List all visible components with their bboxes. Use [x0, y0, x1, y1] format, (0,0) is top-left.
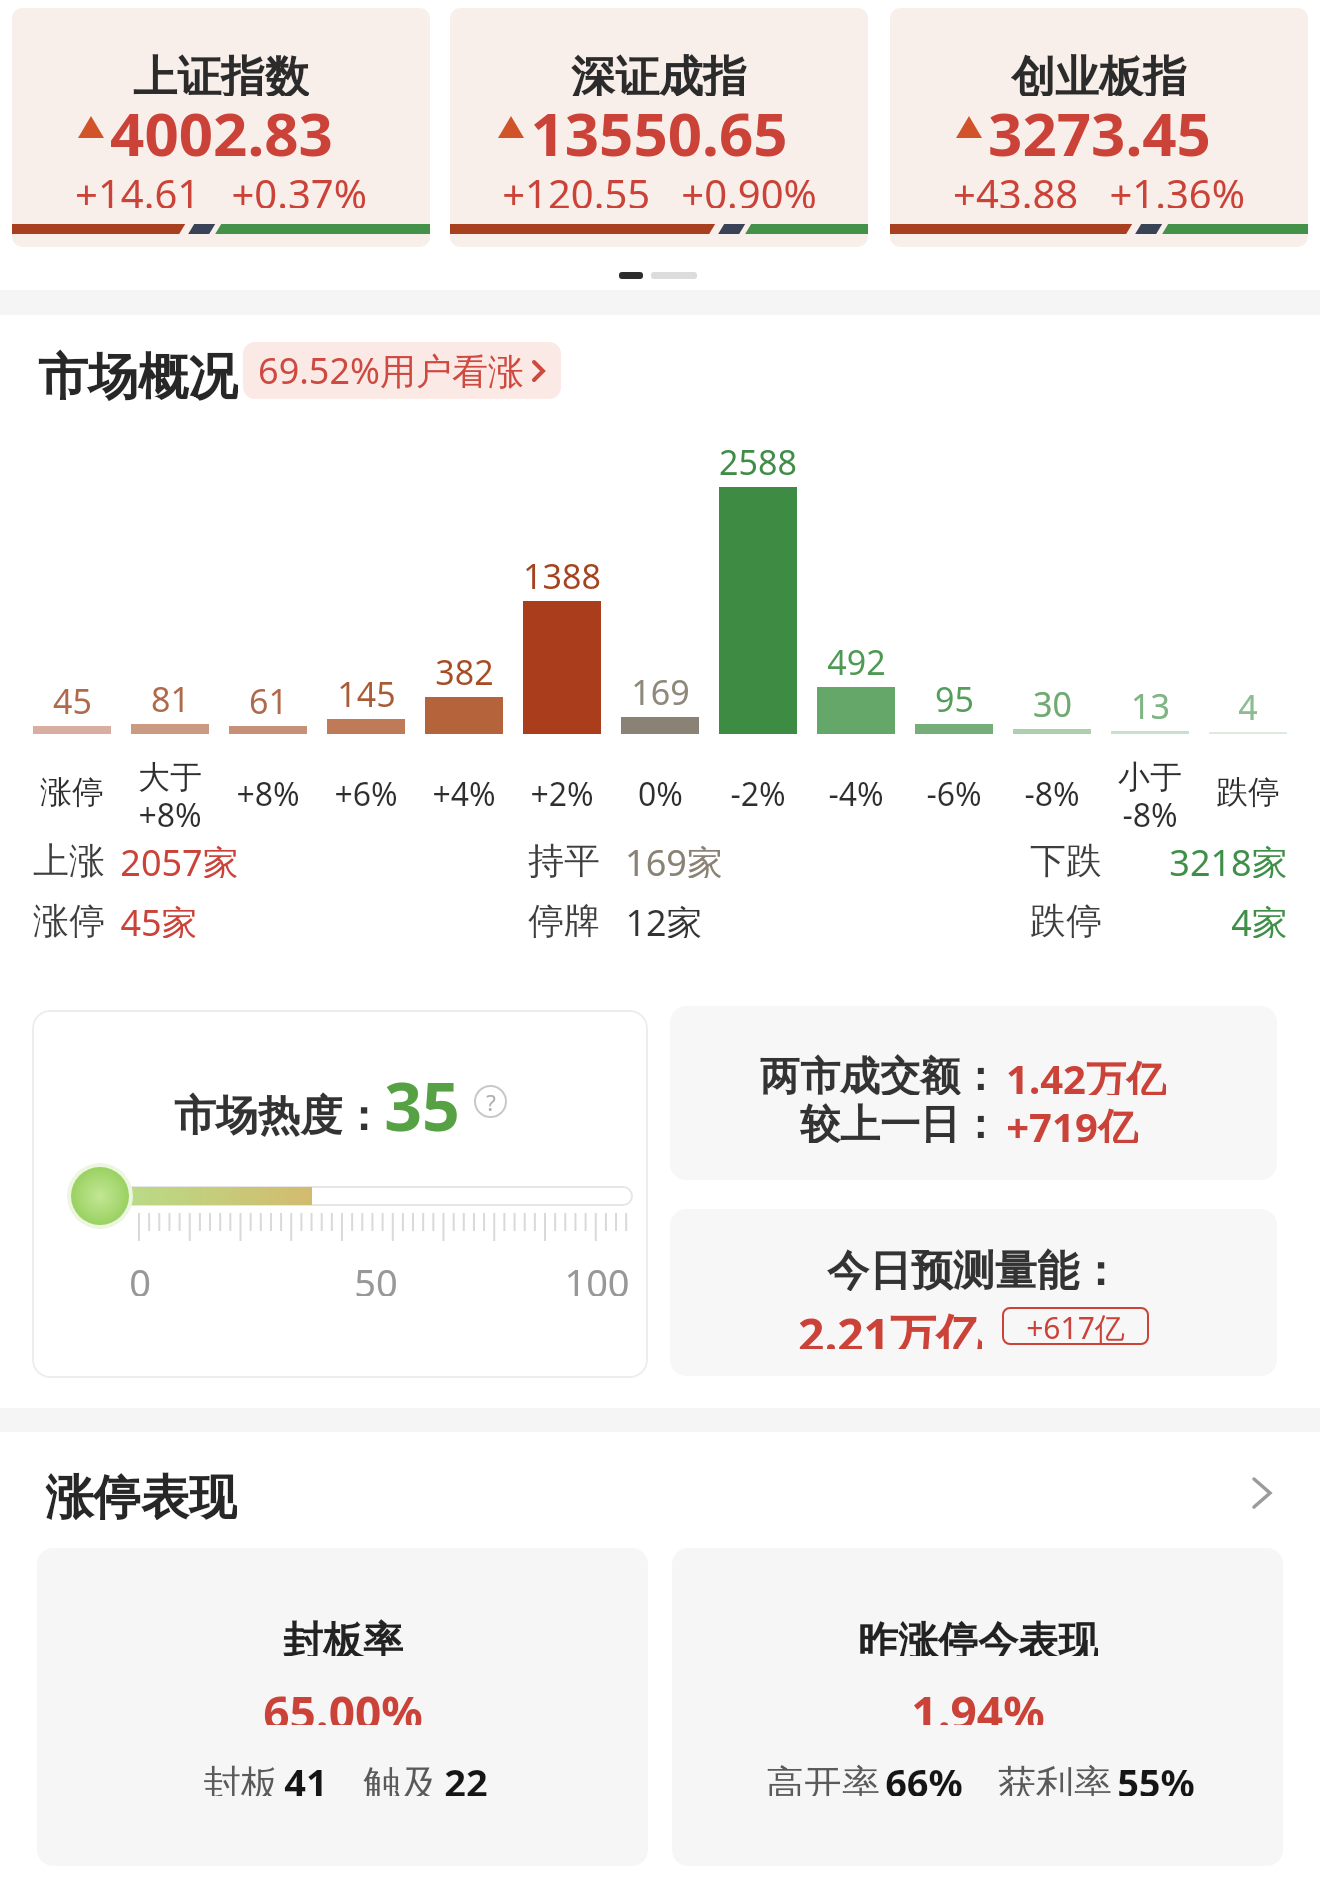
staticText: 50 [354, 1256, 398, 1296]
staticText: 22 [444, 1756, 488, 1796]
staticText: 2588 [719, 439, 797, 479]
staticText: 1.94% [911, 1681, 1045, 1725]
staticText: 69.52%用户看涨 [258, 346, 524, 395]
staticText: 61 [249, 678, 288, 718]
staticText: +14.61 +0.37% [75, 166, 367, 208]
staticText: -8% [1024, 772, 1080, 812]
staticText: 上证指数 [133, 50, 309, 96]
staticText: 95 [935, 676, 974, 716]
staticText: 492 [827, 639, 886, 679]
staticText: 13 [1131, 683, 1170, 723]
staticText: +719亿 [1006, 1099, 1138, 1143]
staticText: 35 [384, 1060, 460, 1140]
staticText: 创业板指 [1011, 50, 1187, 96]
button[interactable]: 今日预测量能： [670, 1209, 1277, 1376]
staticText: +4% [432, 772, 496, 812]
staticText: 1.42万亿 [1006, 1051, 1166, 1095]
staticText: -4% [828, 772, 884, 812]
button[interactable]: 封板率 [37, 1548, 648, 1866]
staticText: 停牌 [528, 898, 600, 938]
staticText: 上涨 [33, 838, 105, 878]
staticText: 市场概况 [38, 346, 238, 402]
button[interactable]: 创业板指 [890, 8, 1308, 247]
staticText: 3218家 [1169, 838, 1288, 878]
staticText: 45 [53, 678, 92, 718]
staticText: ? [486, 1087, 496, 1117]
button[interactable]: 涨停表现 [0, 1460, 1320, 1526]
button[interactable]: 上证指数 [12, 8, 430, 247]
staticText: +6% [334, 772, 398, 812]
staticText: 169家 [625, 838, 723, 878]
button[interactable]: 深证成指 [450, 8, 868, 247]
button[interactable]: 市场热度： [32, 1010, 648, 1378]
staticText: 12家 [625, 898, 703, 938]
staticText: 55% [1117, 1756, 1195, 1796]
staticText: -6% [926, 772, 982, 812]
staticText: 下跌 [1030, 838, 1102, 878]
staticText: 169 [631, 669, 690, 709]
staticText: 跌停 [1030, 898, 1102, 938]
staticText: 跌停 [1216, 772, 1280, 812]
staticText: 涨停表现 [45, 1468, 237, 1520]
staticText: 2057家 [120, 838, 239, 878]
staticText: 100 [564, 1256, 630, 1296]
staticText: 持平 [528, 838, 600, 878]
staticText: +2% [530, 772, 594, 812]
button[interactable]: 昨涨停今表现 [672, 1548, 1283, 1866]
staticText: 封板 [198, 1756, 284, 1796]
staticText: 触及 [358, 1756, 444, 1796]
staticText: 1388 [523, 553, 601, 593]
staticText: +617亿 [1026, 1307, 1125, 1345]
staticText: 获利率 [993, 1756, 1117, 1796]
staticText: 4002.83 [110, 92, 333, 162]
staticText: +120.55 +0.90% [502, 166, 817, 208]
staticText: 两市成交额： [760, 1051, 1000, 1095]
staticText: 大于 +8% [138, 757, 202, 836]
staticText: 今日预测量能： [827, 1245, 1121, 1291]
staticText: 0 [129, 1256, 151, 1296]
staticText: 小于 -8% [1118, 757, 1182, 836]
staticText: 较上一日： [800, 1099, 1000, 1143]
staticText: 30 [1033, 681, 1072, 721]
staticText: 41 [284, 1756, 328, 1796]
staticText: -2% [730, 772, 786, 812]
staticText: 昨涨停今表现 [858, 1616, 1098, 1656]
button[interactable]: ? [474, 1085, 507, 1118]
staticText: 0% [638, 772, 683, 812]
button[interactable]: 69.52%用户看涨 [243, 342, 561, 399]
staticText: 13550.65 [530, 92, 788, 162]
button[interactable]: 两市成交额： [670, 1006, 1277, 1180]
staticText: 市场热度： [174, 1090, 384, 1143]
staticText: 45家 [120, 898, 198, 938]
staticText: 4 [1238, 684, 1258, 724]
staticText: 382 [435, 649, 494, 689]
staticText: 封板率 [283, 1616, 403, 1656]
staticText: 2.21万亿 [798, 1303, 982, 1349]
staticText: 涨停 [33, 898, 105, 938]
staticText: 4家 [1231, 898, 1288, 938]
staticText: 3273.45 [988, 92, 1211, 162]
staticText: 66% [885, 1756, 963, 1796]
staticText: +43.88 +1.36% [953, 166, 1245, 208]
staticText: +8% [236, 772, 300, 812]
staticText: 145 [337, 671, 396, 711]
staticText: 高开率 [761, 1756, 885, 1796]
staticText: 81 [151, 676, 190, 716]
staticText: 65.00% [263, 1681, 423, 1725]
staticText: 涨停 [40, 772, 104, 812]
staticText: 深证成指 [571, 50, 747, 96]
